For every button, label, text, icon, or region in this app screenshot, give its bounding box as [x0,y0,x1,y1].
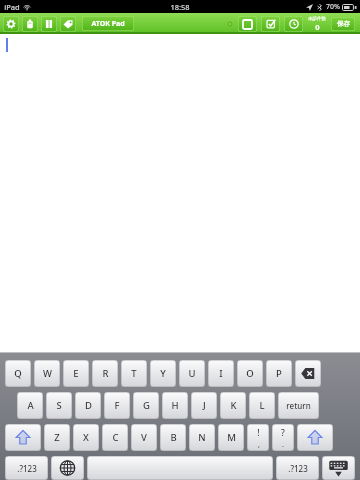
button[interactable]: Hide keyboard [322,456,355,480]
staticText: return [286,400,311,411]
staticText: . [282,439,284,449]
button[interactable]: P [266,360,292,387]
button[interactable]: Tags [60,16,76,32]
staticText: E [73,367,79,380]
staticText: G [143,399,150,412]
staticText: ATOK Pad [91,19,125,29]
button[interactable]: Space [87,456,273,480]
staticText: U [188,367,196,380]
staticText: B [170,431,177,444]
staticText: .?123 [288,463,308,474]
button[interactable]: Y [150,360,176,387]
button[interactable]: return [278,392,319,419]
staticText: S [56,399,62,412]
button[interactable]: Edit [261,16,280,32]
staticText: ! [257,427,260,439]
button[interactable]: N [189,424,215,451]
staticText: 18:58 [170,2,190,12]
button[interactable]: History [284,16,303,32]
staticText: N [198,431,206,444]
button[interactable]: E [63,360,89,387]
staticText: , [258,439,260,449]
button[interactable]: Switch keyboard [51,456,84,480]
staticText: C [112,431,119,444]
staticText: H [171,399,179,412]
staticText: K [230,399,237,412]
button[interactable]: V [131,424,157,451]
button[interactable]: L [249,392,275,419]
button[interactable]: Z [44,424,70,451]
button[interactable]: F [104,392,130,419]
staticText: 70% [326,2,340,12]
button[interactable]: Lock [22,16,38,32]
button[interactable]: Notebook [41,16,57,32]
button[interactable]: B [160,424,186,451]
staticText: F [114,399,120,412]
staticText: Y [160,367,166,380]
staticText: W [43,367,52,380]
staticText: 未読件数 [308,16,326,22]
staticText: J [203,399,206,412]
button[interactable]: M [218,424,244,451]
button[interactable]: Shift [5,424,41,451]
staticText: A [27,399,34,412]
staticText: D [85,399,92,412]
button[interactable]: .?123 [5,456,48,480]
button[interactable]: New note [238,16,257,32]
button[interactable]: Settings [3,16,19,32]
button[interactable]: C [102,424,128,451]
button[interactable]: T [121,360,147,387]
button[interactable]: W [34,360,60,387]
button[interactable]: 保存 [331,17,355,31]
button[interactable]: ATOK Pad [82,16,134,31]
button[interactable]: X [73,424,99,451]
staticText: P [276,367,282,380]
button[interactable]: I [208,360,234,387]
button[interactable]: Backspace [295,360,321,387]
staticText: M [227,431,236,444]
staticText: O [246,367,254,380]
staticText: .?123 [17,463,37,474]
staticText: X [83,431,89,444]
button[interactable]: O [237,360,263,387]
button[interactable]: D [75,392,101,419]
staticText: V [141,431,147,444]
button[interactable]: G [133,392,159,419]
button[interactable]: Q [5,360,31,387]
staticText: 保存 [337,20,350,28]
staticText: L [259,399,265,412]
staticText: Z [54,431,60,444]
button[interactable]: Shift [297,424,333,451]
staticText: R [102,367,109,380]
button[interactable]: R [92,360,118,387]
button[interactable]: J [191,392,217,419]
button[interactable]: S [46,392,72,419]
button[interactable]: A [17,392,43,419]
staticText: ? [281,427,285,439]
staticText: iPad [4,2,20,12]
staticText: Q [14,367,22,380]
button[interactable]: ? [272,424,294,451]
staticText: 0 [315,22,320,32]
button[interactable]: U [179,360,205,387]
button[interactable]: H [162,392,188,419]
button[interactable]: ! [247,424,269,451]
button[interactable]: K [220,392,246,419]
staticText: I [219,367,223,380]
button[interactable]: .?123 [276,456,319,480]
staticText: T [131,367,137,380]
